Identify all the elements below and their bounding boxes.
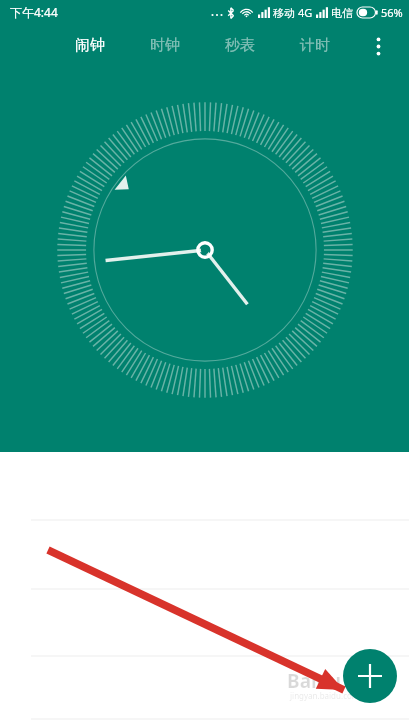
staticText: 电信 bbox=[331, 6, 353, 20]
button[interactable]: 时钟 bbox=[133, 24, 197, 66]
staticText: 4G bbox=[298, 5, 313, 20]
staticText: 56% bbox=[381, 5, 403, 20]
button[interactable]: 秒表 bbox=[208, 24, 272, 66]
staticText: Baidu 经验 bbox=[287, 668, 384, 694]
button[interactable] bbox=[0, 520, 409, 589]
button[interactable] bbox=[0, 589, 409, 656]
staticText: 下午4:44 bbox=[10, 4, 58, 20]
button[interactable]: 计时 bbox=[283, 24, 347, 66]
button[interactable] bbox=[0, 656, 409, 719]
staticText: 计时 bbox=[300, 36, 330, 55]
staticText: 秒表 bbox=[225, 36, 255, 55]
staticText: 闹钟 bbox=[75, 36, 105, 55]
button[interactable]: 闹钟 bbox=[58, 24, 122, 66]
staticText: 移动 bbox=[273, 6, 295, 20]
staticText: jingyan.baidu.com bbox=[290, 690, 360, 701]
button[interactable]: More options bbox=[358, 26, 398, 66]
button[interactable]: Add alarm bbox=[343, 649, 397, 703]
staticText: 时钟 bbox=[150, 36, 180, 55]
